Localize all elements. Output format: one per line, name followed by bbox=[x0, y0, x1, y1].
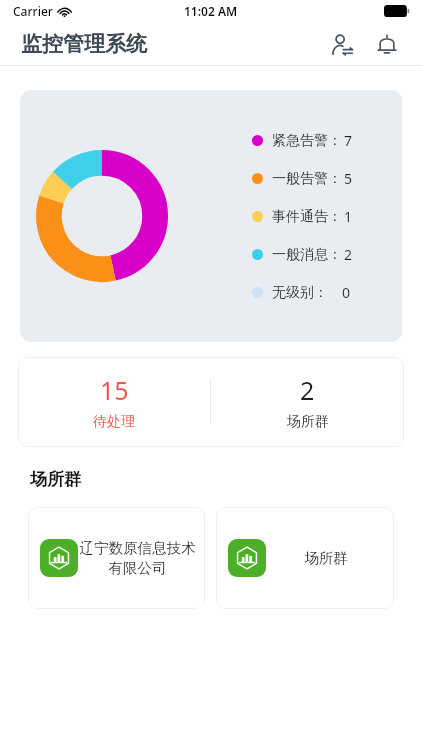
staticText: 2 bbox=[300, 373, 315, 407]
staticText: 15 bbox=[100, 373, 129, 407]
staticText: 一般消息： bbox=[272, 246, 342, 264]
staticText: 11:02 AM bbox=[184, 3, 238, 19]
staticText: 场所群 bbox=[287, 413, 329, 431]
staticText: 一般告警： bbox=[272, 170, 342, 188]
button[interactable]: 15 bbox=[18, 357, 210, 447]
button[interactable]: Notifications bbox=[372, 29, 402, 59]
button[interactable]: 辽宁数原信息技术有限公司 bbox=[28, 507, 205, 609]
staticText: 待处理 bbox=[93, 413, 135, 431]
staticText: Carrier bbox=[13, 3, 53, 19]
button[interactable]: Switch user bbox=[326, 29, 356, 59]
staticText: 2 bbox=[344, 245, 353, 264]
staticText: 场所群 bbox=[304, 549, 348, 567]
staticText: 场所群 bbox=[30, 469, 81, 490]
staticText: 0 bbox=[342, 283, 351, 302]
button[interactable]: 场所群 bbox=[216, 507, 394, 609]
staticText: 5 bbox=[344, 169, 353, 188]
staticText: 辽宁数原信息技术有限公司 bbox=[78, 539, 197, 577]
staticText: 无级别： bbox=[272, 284, 328, 302]
staticText: 1 bbox=[344, 207, 353, 226]
staticText: 7 bbox=[344, 131, 353, 150]
button[interactable]: 2 bbox=[211, 357, 404, 447]
staticText: 紧急告警： bbox=[272, 132, 342, 150]
staticText: 事件通告： bbox=[272, 208, 342, 226]
staticText: 监控管理系统 bbox=[21, 31, 147, 57]
